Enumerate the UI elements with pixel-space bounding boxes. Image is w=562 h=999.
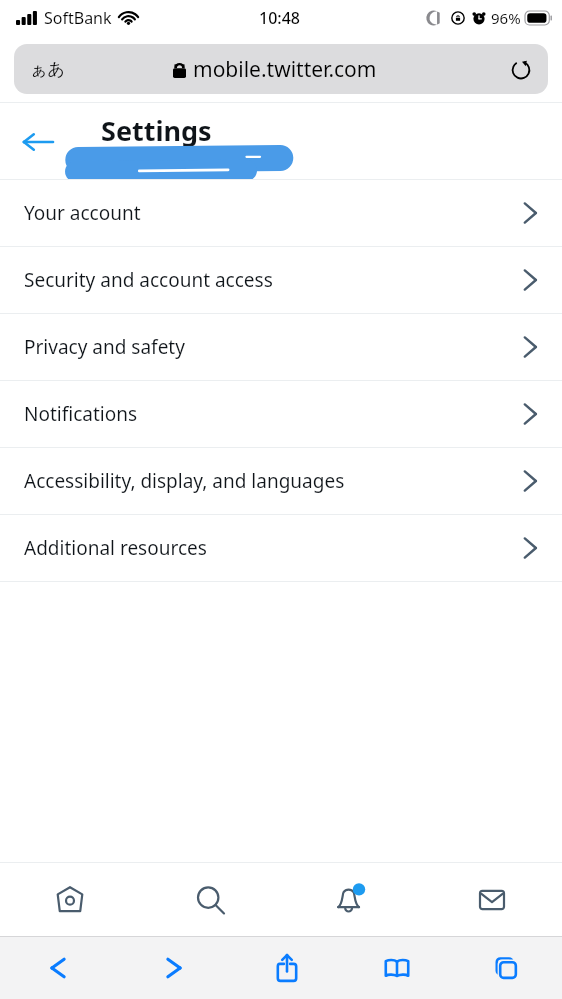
button[interactable]: Share (232, 937, 342, 999)
button[interactable]: Your account (0, 180, 562, 246)
staticText: mobile.twitter.com (193, 55, 377, 84)
button[interactable]: Tabs (452, 937, 562, 999)
button[interactable]: Back (0, 937, 116, 999)
staticText: Accessibility, display, and languages (24, 468, 345, 494)
staticText: Settings (101, 112, 212, 149)
button[interactable]: Messages (421, 863, 562, 936)
staticText: SoftBank (44, 7, 112, 29)
button[interactable]: ぁあ (14, 44, 548, 94)
button[interactable]: Privacy and safety (0, 314, 562, 380)
staticText: 10:48 (259, 7, 300, 29)
staticText: Security and account access (24, 267, 273, 293)
staticText: ぁあ (30, 59, 65, 80)
staticText: Additional resources (24, 535, 207, 561)
button[interactable]: Forward (116, 937, 232, 999)
button[interactable]: Security and account access (0, 247, 562, 313)
staticText: Your account (24, 200, 141, 226)
button[interactable]: Additional resources (0, 515, 562, 581)
button[interactable]: Reload page (504, 52, 538, 86)
staticText: Privacy and safety (24, 334, 185, 360)
staticText: Notifications (24, 401, 138, 427)
button[interactable]: Notifications (0, 381, 562, 447)
button[interactable]: Bookmarks (342, 937, 452, 999)
button[interactable]: Home (0, 863, 140, 936)
button[interactable]: Notifications, 2 new (280, 863, 421, 936)
staticText: 96% (491, 8, 521, 28)
button[interactable]: Back (14, 118, 62, 166)
button[interactable]: Search (140, 863, 280, 936)
button[interactable]: Accessibility, display, and languages (0, 448, 562, 514)
